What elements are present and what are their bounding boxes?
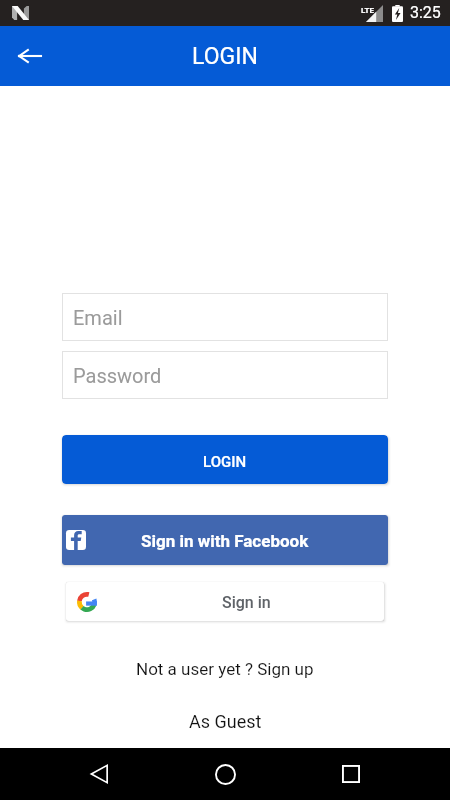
button[interactable]: Not a user yet ? Sign up [62,656,388,676]
button[interactable]: Recent apps [327,750,375,798]
staticText: Sign in [222,593,271,612]
button[interactable]: Sign in [66,582,384,621]
staticText: Sign in with Facebook [141,531,309,551]
staticText: LOGIN [203,453,247,471]
staticText: Email [73,306,123,329]
button[interactable]: Email [62,293,388,341]
staticText: LOGIN [192,43,258,70]
button[interactable]: LOGIN [62,435,388,484]
staticText: Not a user yet ? Sign up [136,659,314,679]
button[interactable]: Sign in with Facebook [62,515,388,565]
staticText: 3:25 [410,3,441,22]
button[interactable]: Home [201,750,249,798]
staticText: As Guest [189,711,262,732]
button[interactable]: As Guest [62,708,388,729]
button[interactable]: Password [62,351,388,399]
staticText: Password [73,364,162,387]
button[interactable]: Back [75,750,123,798]
button[interactable]: Back [6,33,52,79]
staticText: LTE [361,6,374,15]
